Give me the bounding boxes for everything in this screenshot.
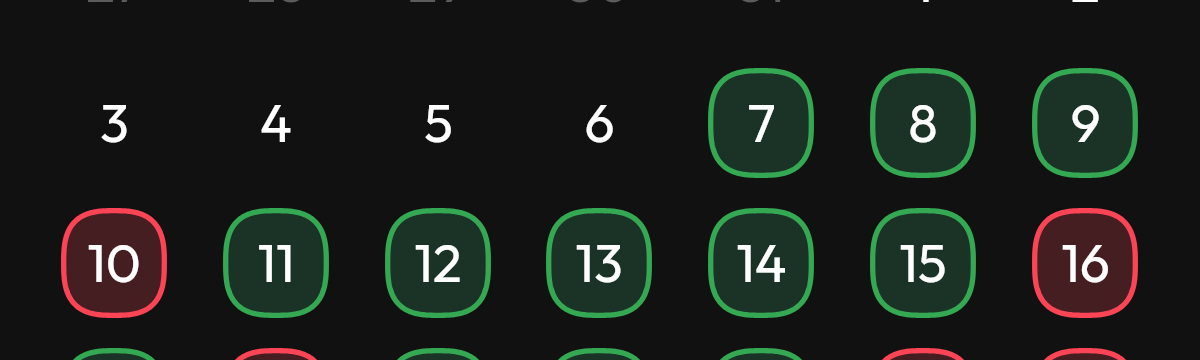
button[interactable]: 16 xyxy=(1032,208,1138,318)
button[interactable]: 29 xyxy=(385,0,491,38)
button[interactable]: 18 xyxy=(223,348,329,360)
staticText: 30 xyxy=(567,0,631,15)
button[interactable]: 8 xyxy=(870,68,976,178)
button[interactable]: 3 xyxy=(61,68,167,178)
button[interactable]: 7 xyxy=(708,68,814,178)
button[interactable]: 17 xyxy=(61,348,167,360)
staticText: 5 xyxy=(424,88,453,155)
button[interactable]: 13 xyxy=(546,208,652,318)
button[interactable]: 12 xyxy=(385,208,491,318)
staticText: 15 xyxy=(899,228,947,295)
button[interactable]: 30 xyxy=(546,0,652,38)
staticText: 14 xyxy=(736,228,787,295)
staticText: 6 xyxy=(584,88,615,155)
button[interactable]: 23 xyxy=(1032,348,1138,360)
button[interactable]: 4 xyxy=(223,68,329,178)
button[interactable]: 14 xyxy=(708,208,814,318)
button[interactable]: 19 xyxy=(385,348,491,360)
button[interactable]: 11 xyxy=(223,208,329,318)
staticText: 4 xyxy=(260,88,292,155)
staticText: 11 xyxy=(257,228,295,295)
staticText: 2 xyxy=(1071,0,1100,15)
button[interactable]: 27 xyxy=(61,0,167,38)
staticText: 28 xyxy=(247,0,306,15)
staticText: 16 xyxy=(1061,228,1110,295)
staticText: 3 xyxy=(100,88,129,155)
button[interactable]: 31 xyxy=(708,0,814,38)
staticText: 1 xyxy=(914,0,933,15)
staticText: 8 xyxy=(908,88,938,155)
button[interactable]: 6 xyxy=(546,68,652,178)
staticText: 31 xyxy=(737,0,785,15)
button[interactable]: 21 xyxy=(708,348,814,360)
staticText: 7 xyxy=(747,88,776,155)
button[interactable]: 1 xyxy=(870,0,976,38)
button[interactable]: 20 xyxy=(546,348,652,360)
button[interactable]: 28 xyxy=(223,0,329,38)
button[interactable]: 22 xyxy=(870,348,976,360)
staticText: 9 xyxy=(1070,88,1101,155)
button[interactable]: 2 xyxy=(1032,0,1138,38)
button[interactable]: 9 xyxy=(1032,68,1138,178)
staticText: 27 xyxy=(86,0,142,15)
staticText: 12 xyxy=(414,228,462,295)
button[interactable]: 15 xyxy=(870,208,976,318)
staticText: 13 xyxy=(575,228,623,295)
button[interactable]: 10 xyxy=(61,208,167,318)
button[interactable]: 5 xyxy=(385,68,491,178)
staticText: 29 xyxy=(408,0,468,15)
staticText: 10 xyxy=(87,228,141,295)
